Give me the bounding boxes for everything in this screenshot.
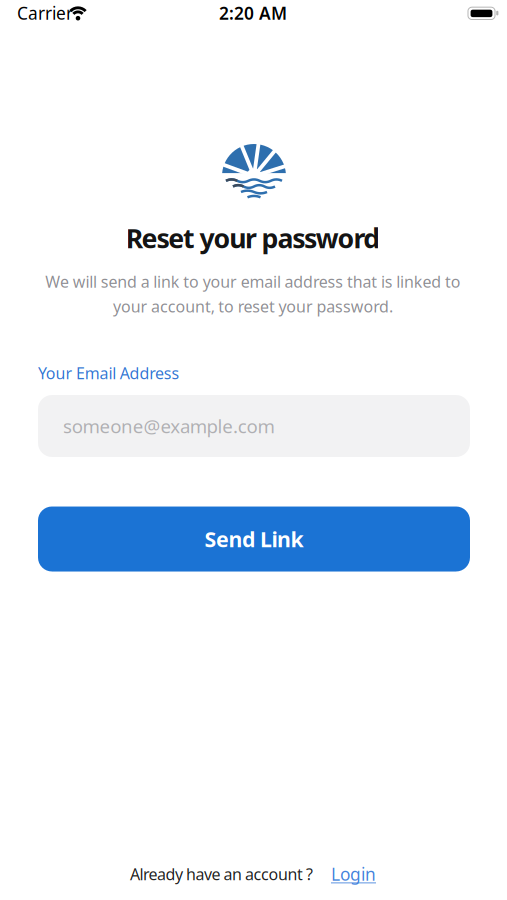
staticText: Send Link [204, 525, 303, 553]
staticText: Reset your password [126, 220, 380, 256]
staticText: 2:20 AM [219, 1, 287, 24]
button[interactable]: Login [331, 862, 376, 885]
staticText: someone@example.com [63, 414, 274, 438]
staticText: We will send a link to your email addres… [45, 271, 461, 292]
button[interactable]: Your Email Address [38, 395, 470, 457]
staticText: Carrier [17, 1, 73, 24]
button[interactable]: Send Link [38, 506, 470, 571]
staticText: Login [331, 862, 376, 885]
staticText: Your Email Address [38, 362, 180, 384]
staticText: Already have an account ? [130, 863, 313, 885]
staticText: your account, to reset your password. [113, 296, 393, 317]
